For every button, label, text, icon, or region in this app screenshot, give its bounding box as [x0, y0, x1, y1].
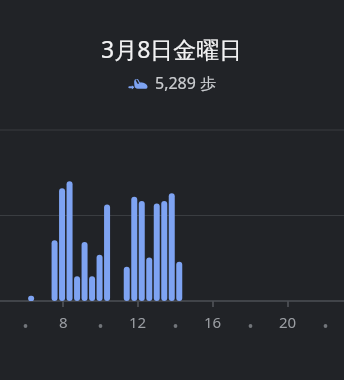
- staticText: 8: [59, 312, 68, 332]
- staticText: 5,289 歩: [155, 72, 217, 94]
- other: Steps: [128, 73, 148, 93]
- staticText: 3月8日金曜日: [101, 33, 243, 64]
- button[interactable]: 3月8日金曜日: [0, 33, 344, 64]
- button[interactable]: Steps: [0, 72, 344, 94]
- staticText: 12: [129, 312, 147, 332]
- staticText: 16: [204, 312, 222, 332]
- button[interactable]: 8: [0, 120, 344, 350]
- staticText: 20: [279, 312, 297, 332]
